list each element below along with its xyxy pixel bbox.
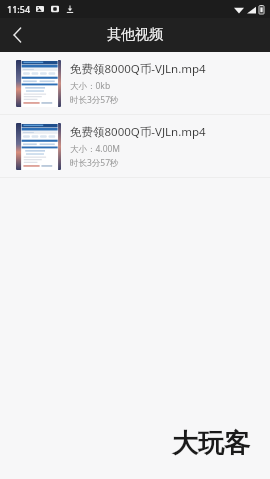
- staticText: 免费领8000Q币-VJLn.mp4: [70, 124, 206, 140]
- staticText: 免费领8000Q币-VJLn.mp4: [70, 61, 206, 77]
- button[interactable]: 免费领8000Q币-VJLn.mp4: [0, 52, 270, 114]
- staticText: 大玩客: [172, 427, 250, 460]
- staticText: 时长3分57秒: [70, 94, 119, 106]
- button[interactable]: Back: [0, 18, 34, 52]
- button[interactable]: 免费领8000Q币-VJLn.mp4: [0, 115, 270, 177]
- staticText: 时长3分57秒: [70, 157, 119, 169]
- staticText: 大小：4.00M: [70, 143, 121, 155]
- staticText: 11:54: [7, 3, 31, 15]
- staticText: 大小：0kb: [70, 80, 111, 92]
- staticText: 其他视频: [107, 26, 163, 44]
